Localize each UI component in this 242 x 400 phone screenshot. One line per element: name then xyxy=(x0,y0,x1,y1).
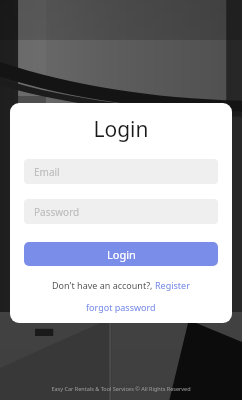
button[interactable]: Register xyxy=(155,279,190,291)
button[interactable]: Email xyxy=(24,159,218,184)
staticText: Don't have an account?, xyxy=(52,279,155,291)
staticText: forgot password xyxy=(86,301,156,313)
staticText: Easy Car Rentals & Tool Services © All R… xyxy=(51,385,191,392)
button[interactable]: Password xyxy=(24,199,218,224)
button[interactable]: forgot password xyxy=(86,301,156,313)
staticText: Email xyxy=(34,165,60,179)
staticText: Login xyxy=(107,247,136,262)
staticText: Login xyxy=(93,115,149,144)
staticText: Password xyxy=(34,205,80,219)
staticText: Register xyxy=(155,279,190,291)
button[interactable]: Login xyxy=(24,242,218,266)
